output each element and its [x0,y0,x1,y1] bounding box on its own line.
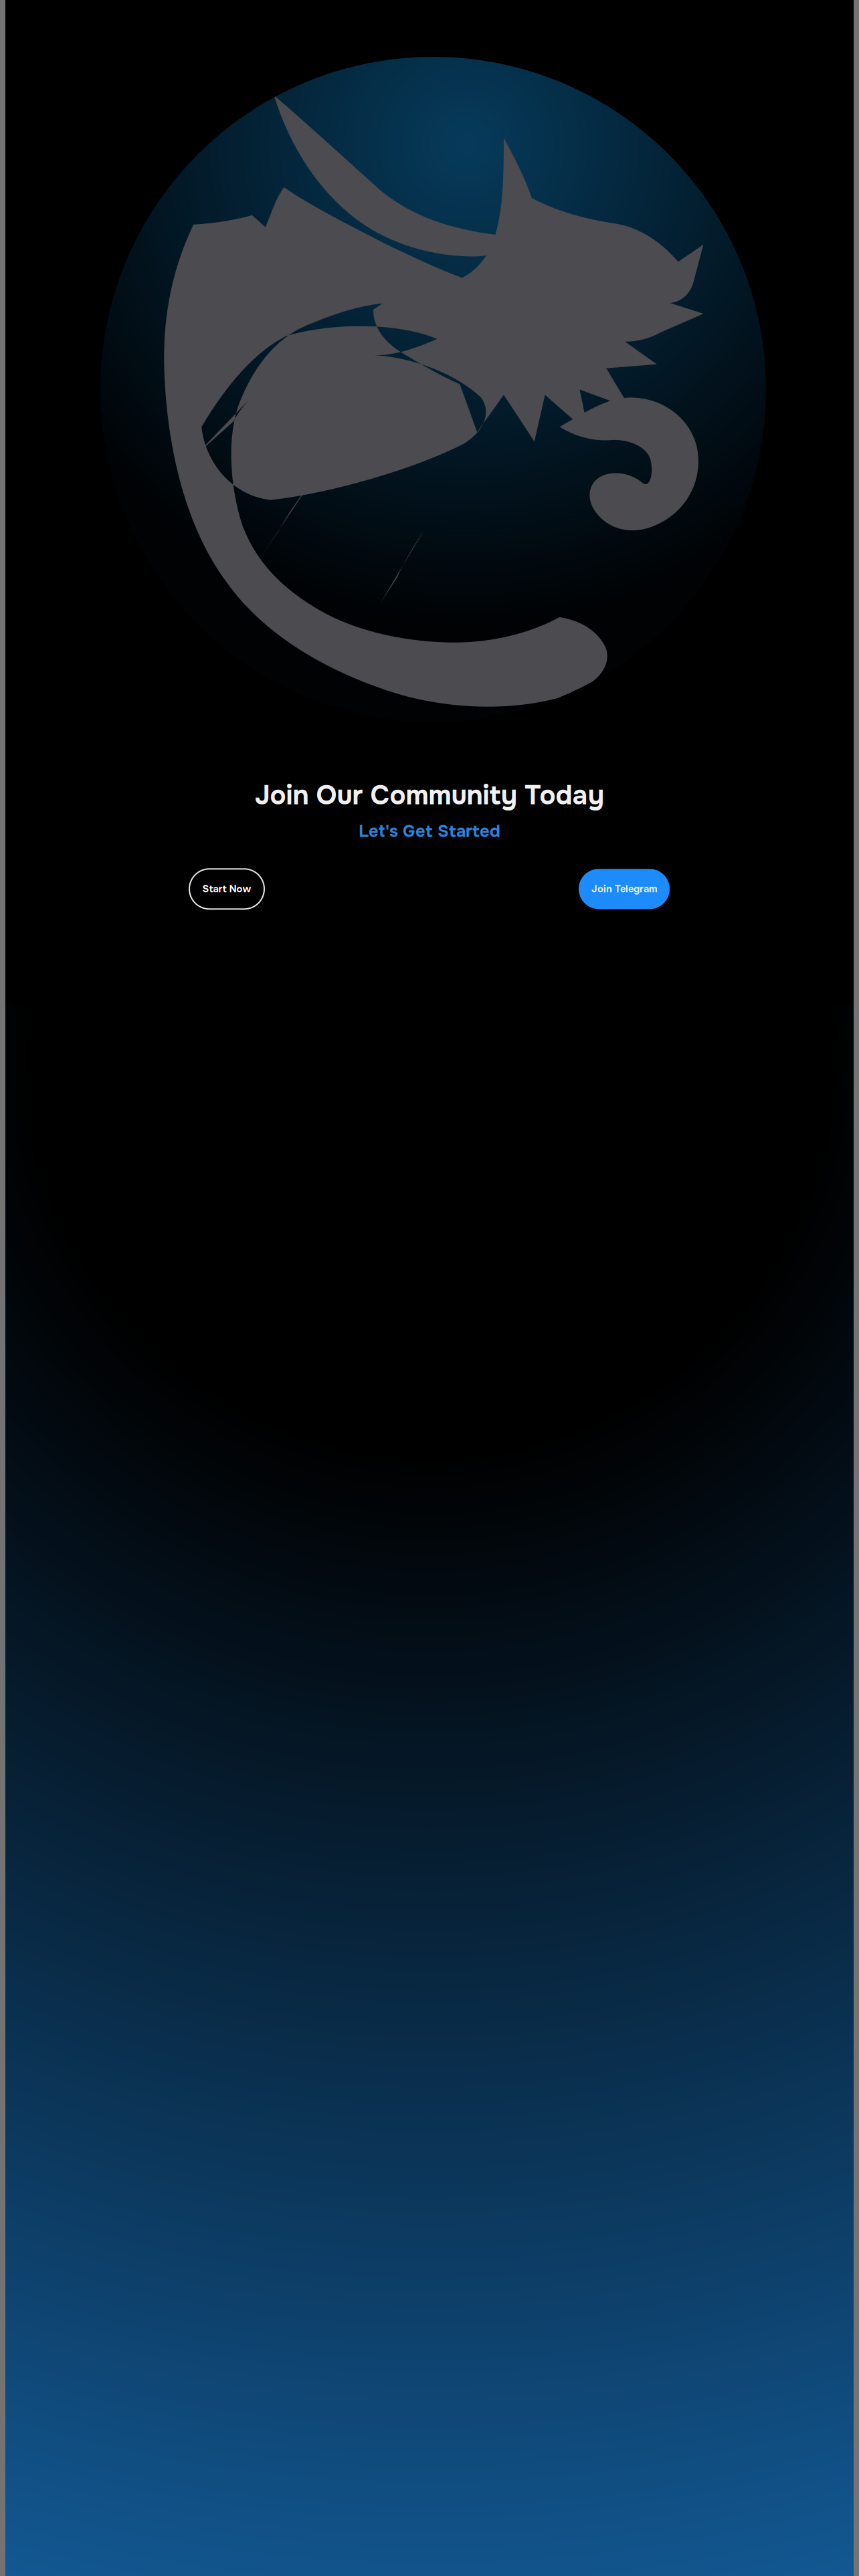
button[interactable]: Start Now [189,869,264,909]
staticText: Join Telegram [591,883,657,895]
staticText: Let's Get Started [359,821,500,842]
staticText: Join Our Community Today [255,778,604,813]
staticText: Start Now [202,883,251,895]
button[interactable]: Join Telegram [579,869,670,909]
